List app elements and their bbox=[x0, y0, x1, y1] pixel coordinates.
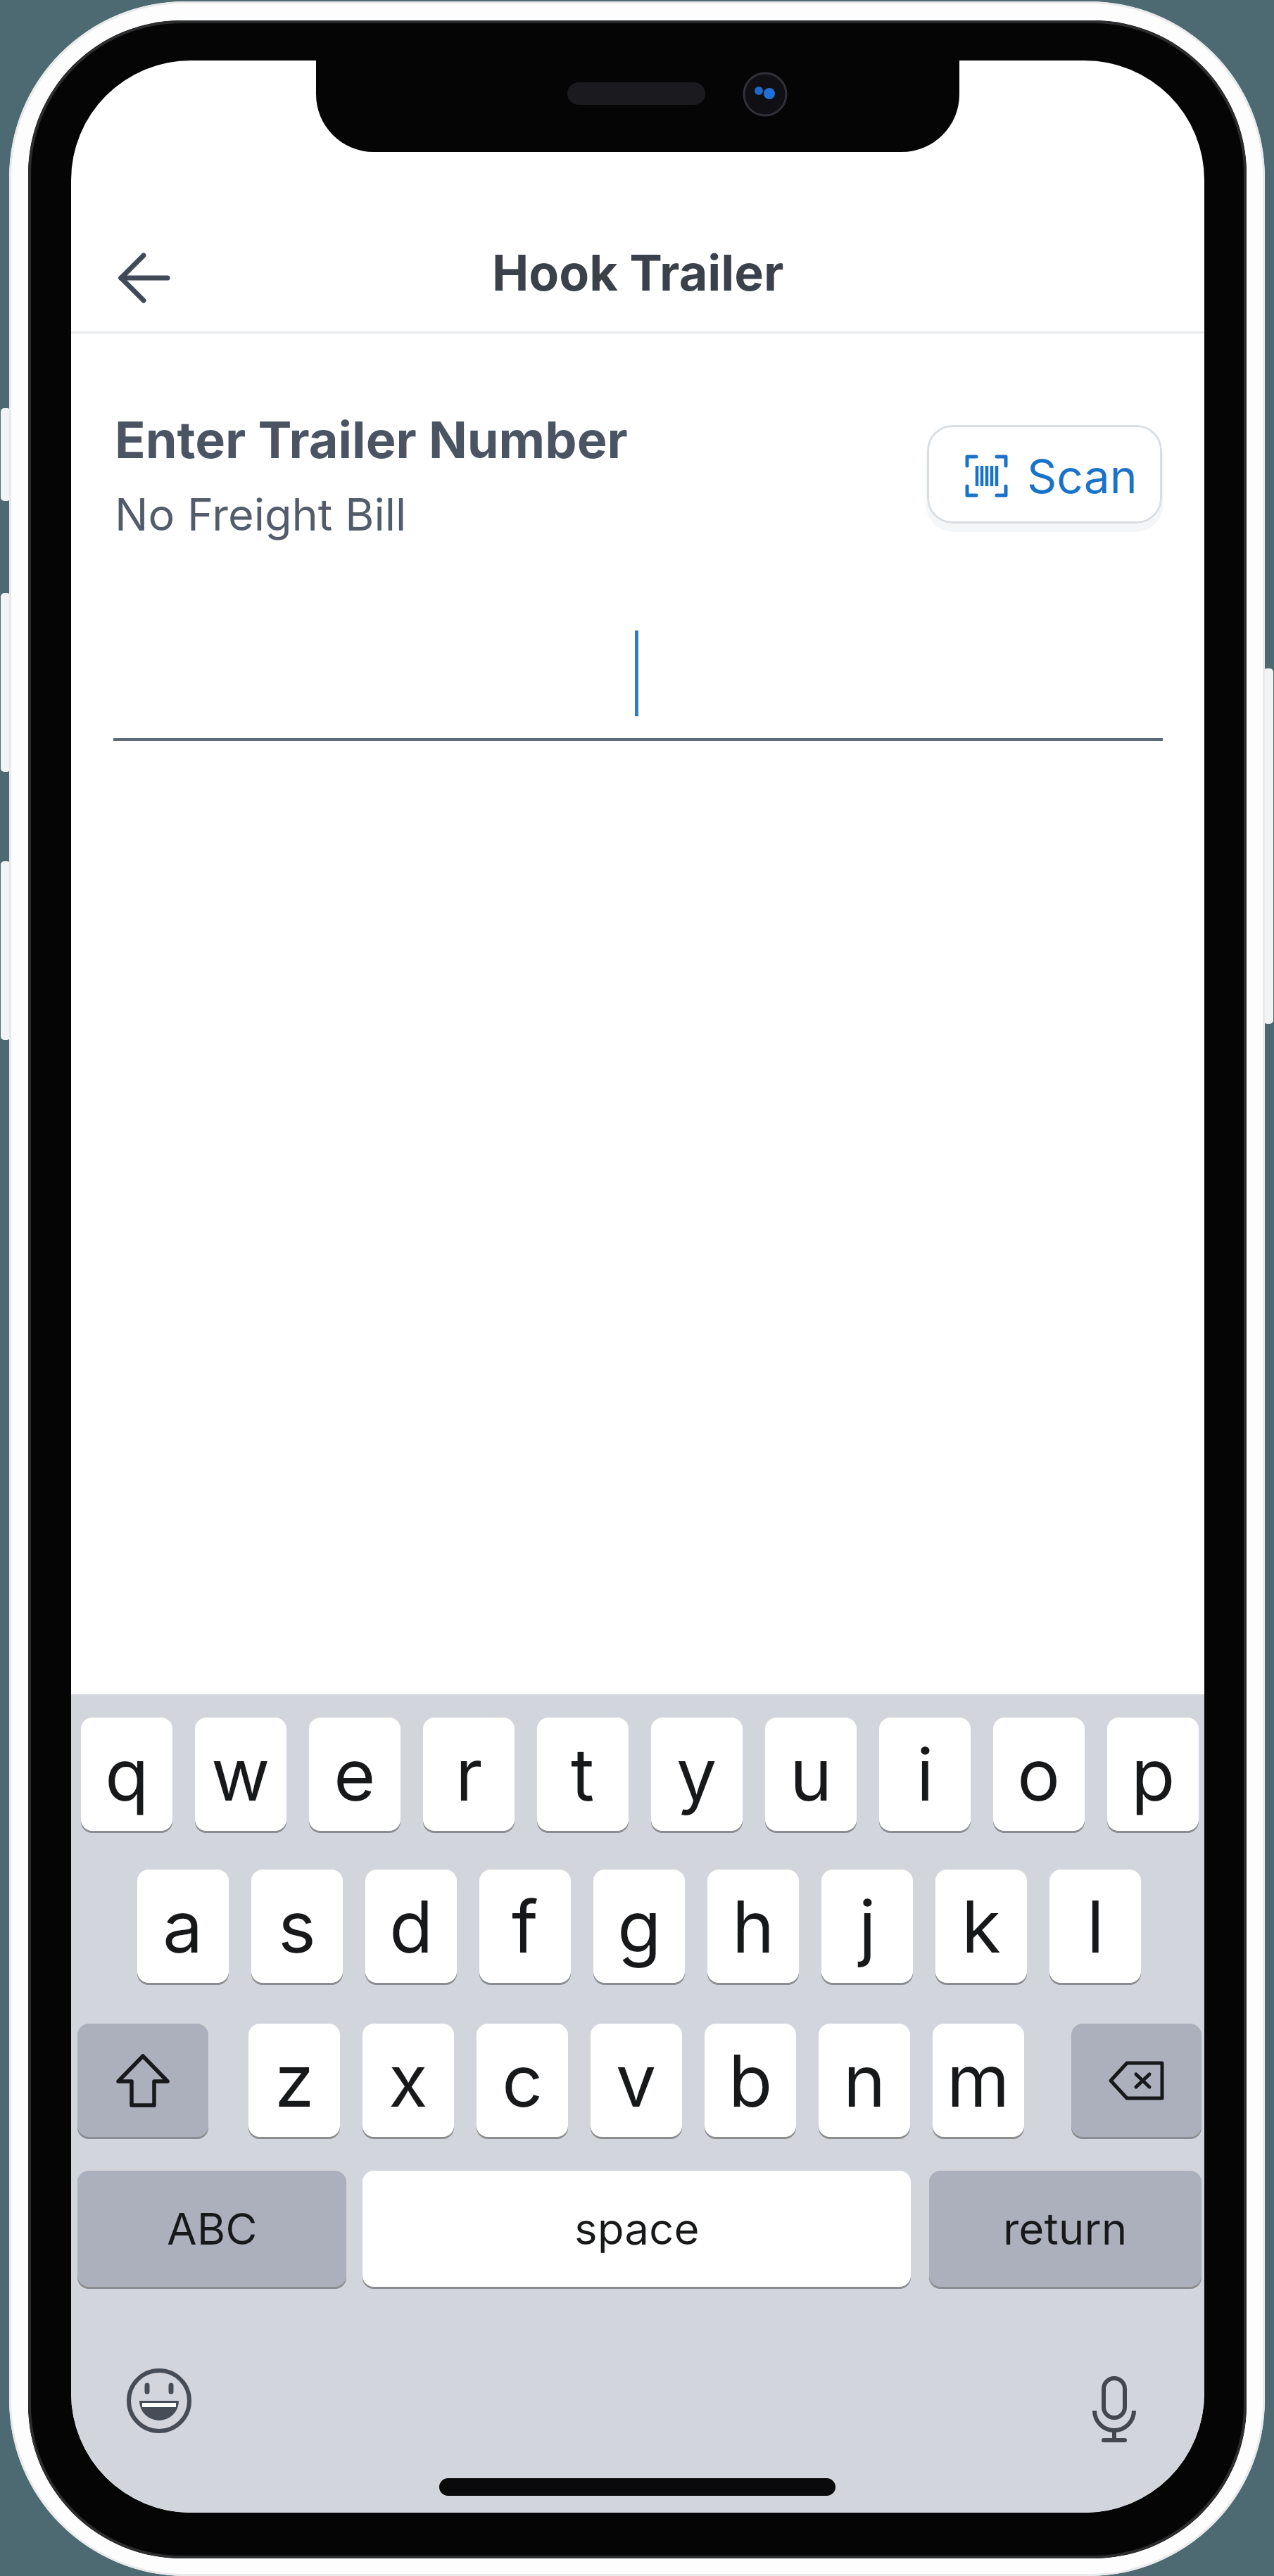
staticText: ABC bbox=[167, 2202, 258, 2255]
button[interactable]: g bbox=[593, 1870, 685, 1983]
staticText: m bbox=[947, 2037, 1010, 2124]
staticText: r bbox=[455, 1731, 483, 1817]
staticText: h bbox=[732, 1883, 775, 1969]
button[interactable]: a bbox=[137, 1870, 229, 1983]
button[interactable]: e bbox=[309, 1718, 401, 1831]
staticText: d bbox=[389, 1883, 434, 1969]
button[interactable] bbox=[124, 2366, 194, 2436]
button[interactable]: ABC bbox=[77, 2171, 346, 2287]
staticText: j bbox=[859, 1883, 876, 1969]
staticText: i bbox=[916, 1731, 934, 1817]
staticText: Hook Trailer bbox=[492, 243, 784, 303]
staticText: No Freight Bill bbox=[115, 488, 407, 541]
button[interactable]: f bbox=[479, 1870, 571, 1983]
button[interactable]: r bbox=[423, 1718, 515, 1831]
button[interactable]: b bbox=[705, 2024, 796, 2137]
staticText: b bbox=[729, 2037, 773, 2124]
staticText: g bbox=[617, 1883, 662, 1969]
button[interactable]: return bbox=[929, 2171, 1202, 2287]
button[interactable]: l bbox=[1049, 1870, 1141, 1983]
staticText: s bbox=[278, 1883, 316, 1969]
button[interactable] bbox=[103, 247, 187, 310]
button[interactable]: x bbox=[362, 2024, 454, 2137]
button[interactable]: v bbox=[591, 2024, 682, 2137]
staticText: a bbox=[163, 1883, 203, 1969]
button[interactable] bbox=[1071, 2024, 1202, 2137]
staticText: c bbox=[502, 2037, 543, 2124]
staticText: Scan bbox=[1027, 448, 1137, 505]
staticText: w bbox=[211, 1731, 270, 1817]
button[interactable]: n bbox=[819, 2024, 910, 2137]
button[interactable]: i bbox=[879, 1718, 971, 1831]
button[interactable]: y bbox=[651, 1718, 743, 1831]
staticText: o bbox=[1017, 1731, 1061, 1817]
button[interactable]: k bbox=[935, 1870, 1027, 1983]
staticText: z bbox=[275, 2037, 315, 2124]
button[interactable]: d bbox=[365, 1870, 457, 1983]
staticText: q bbox=[105, 1731, 149, 1817]
button[interactable]: m bbox=[933, 2024, 1024, 2137]
button[interactable]: j bbox=[821, 1870, 913, 1983]
button[interactable]: q bbox=[81, 1718, 172, 1831]
button[interactable]: p bbox=[1107, 1718, 1199, 1831]
staticText: return bbox=[1003, 2202, 1128, 2255]
button[interactable]: s bbox=[251, 1870, 343, 1983]
staticText: l bbox=[1087, 1883, 1104, 1969]
button[interactable]: t bbox=[537, 1718, 629, 1831]
staticText: x bbox=[389, 2037, 428, 2124]
staticText: k bbox=[961, 1883, 1001, 1969]
button[interactable]: z bbox=[248, 2024, 340, 2137]
button[interactable]: h bbox=[707, 1870, 799, 1983]
button[interactable] bbox=[927, 425, 1162, 524]
button[interactable]: w bbox=[195, 1718, 286, 1831]
button[interactable]: o bbox=[993, 1718, 1085, 1831]
staticText: y bbox=[676, 1731, 717, 1817]
staticText: e bbox=[334, 1731, 376, 1817]
staticText: f bbox=[512, 1883, 538, 1969]
staticText: v bbox=[616, 2037, 657, 2124]
staticText: t bbox=[571, 1731, 595, 1817]
button[interactable] bbox=[1079, 2370, 1149, 2451]
staticText: space bbox=[574, 2202, 700, 2255]
button[interactable]: space bbox=[362, 2171, 911, 2287]
staticText: u bbox=[790, 1731, 833, 1817]
staticText: Enter Trailer Number bbox=[115, 409, 628, 470]
staticText: p bbox=[1131, 1731, 1175, 1817]
button[interactable]: c bbox=[477, 2024, 568, 2137]
button[interactable]: u bbox=[765, 1718, 857, 1831]
staticText: n bbox=[843, 2037, 886, 2124]
button[interactable] bbox=[77, 2024, 208, 2137]
